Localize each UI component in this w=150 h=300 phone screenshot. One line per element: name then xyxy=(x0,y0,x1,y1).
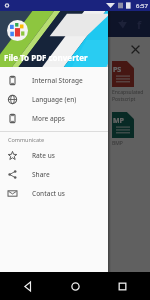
button[interactable]: Share xyxy=(0,165,108,184)
button[interactable]: Home xyxy=(65,276,85,296)
staticText: Internal Storage xyxy=(32,76,83,85)
staticText: Rate us xyxy=(32,151,55,160)
button[interactable]: Facebook xyxy=(132,17,146,31)
button[interactable]: Twitter xyxy=(115,17,129,31)
staticText: Language (en) xyxy=(32,95,77,104)
staticText: f xyxy=(137,17,142,31)
staticText: 6:57 xyxy=(136,2,148,10)
staticText: File To PDF converter xyxy=(4,52,88,63)
staticText: Communicate xyxy=(8,136,45,143)
button[interactable]: Back xyxy=(18,276,38,296)
staticText: Contact us xyxy=(32,189,65,198)
staticText: BMP xyxy=(112,140,123,147)
button[interactable]: Contact us xyxy=(0,184,108,203)
button[interactable]: More apps xyxy=(0,109,108,128)
button[interactable]: Recents xyxy=(112,276,132,296)
staticText: Share xyxy=(32,170,50,179)
staticText: More apps xyxy=(32,114,65,123)
button[interactable]: Language (en) xyxy=(0,90,108,109)
button[interactable]: Close xyxy=(129,43,142,56)
staticText: MP xyxy=(113,116,124,126)
button[interactable]: Internal Storage xyxy=(0,71,108,90)
staticText: PS xyxy=(113,65,122,75)
staticText: Encapsulated Postscript xyxy=(112,89,144,102)
button[interactable]: Rate us xyxy=(0,146,108,165)
